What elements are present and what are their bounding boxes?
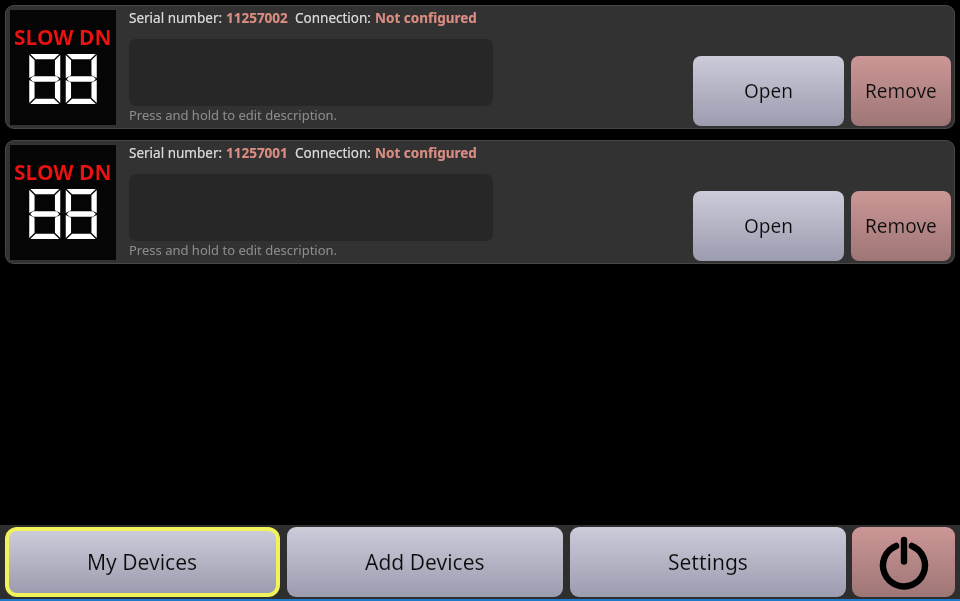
staticText: Serial number:: [129, 9, 226, 27]
button[interactable]: Settings: [570, 527, 846, 597]
staticText: Connection:: [295, 9, 375, 27]
button[interactable]: Remove: [851, 56, 951, 126]
staticText: 11257002: [226, 9, 288, 27]
button[interactable]: My Devices: [9, 531, 276, 593]
staticText: Serial number:: [129, 144, 226, 162]
staticText: Press and hold to edit description.: [129, 106, 338, 124]
staticText: SLOW DN: [14, 23, 112, 52]
staticText: Press and hold to edit description.: [129, 241, 338, 259]
button[interactable]: Power off: [852, 527, 955, 597]
button[interactable]: Open: [693, 56, 844, 126]
staticText: Not configured: [375, 144, 477, 162]
staticText: Remove: [865, 78, 937, 104]
staticText: Open: [744, 78, 793, 104]
staticText: Not configured: [375, 9, 477, 27]
staticText: SLOW DN: [14, 158, 112, 187]
staticText: Add Devices: [365, 548, 485, 577]
staticText: Open: [744, 213, 793, 239]
staticText: 11257001: [226, 144, 288, 162]
staticText: Remove: [865, 213, 937, 239]
staticText: Connection:: [295, 144, 375, 162]
button[interactable]: Remove: [851, 191, 951, 261]
button[interactable]: Open: [693, 191, 844, 261]
button[interactable]: Add Devices: [287, 527, 563, 597]
staticText: My Devices: [87, 548, 198, 577]
staticText: Settings: [668, 548, 748, 577]
